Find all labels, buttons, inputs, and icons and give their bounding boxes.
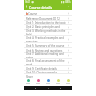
staticText: Unit 8: Final assessment of the — [26, 59, 65, 63]
button[interactable]: Navigate up — [25, 5, 28, 8]
staticText: Unit 10: Closing remarks — [26, 71, 57, 75]
staticText: field — [26, 33, 32, 36]
button[interactable]: More options — [67, 5, 70, 8]
staticText: Unit 1: Introduction to the topic — [26, 21, 66, 25]
button[interactable]: Share target — [37, 79, 40, 82]
staticText: exercises — [26, 40, 38, 43]
staticText: Share — [26, 75, 33, 79]
button[interactable]: Share target — [27, 79, 30, 82]
button[interactable]: Unit 5: Summary of the course — [24, 43, 72, 48]
button[interactable]: Reference Document ID 12 — [24, 16, 72, 21]
staticText: Unit 6: Review and questions — [26, 49, 63, 53]
staticText: ▮ ▮ 88% — [61, 0, 71, 4]
staticText: Unit 4: Practical examples and — [26, 36, 64, 40]
button[interactable]: Unit 6: Review and questions — [24, 48, 72, 53]
button[interactable]: Unit 3: Working methods in the — [24, 29, 72, 36]
staticText: 1 Course — [26, 12, 38, 16]
staticText: Unit 9: Certificate details — [26, 67, 57, 71]
button[interactable]: 1 Course — [24, 11, 72, 16]
staticText: work — [26, 63, 33, 66]
staticText: Reference Document ID 12 — [26, 17, 60, 21]
staticText: Course details — [29, 5, 53, 10]
staticText: notes — [26, 56, 34, 59]
staticText: 9:41 ● — [25, 0, 34, 4]
button[interactable]: Unit 10: Closing remarks — [24, 70, 72, 75]
staticText: Unit 5: Summary of the course — [26, 44, 65, 48]
staticText: Unit 7: Additional reading and — [26, 52, 64, 56]
staticText: Unit 2: Basic principles and ideas — [26, 25, 66, 30]
button[interactable]: Unit 7: Additional reading and — [24, 52, 72, 59]
button[interactable]: Share target — [47, 79, 50, 82]
button[interactable]: Share target — [67, 79, 70, 82]
button[interactable]: Unit 1: Introduction to the topic — [24, 20, 72, 25]
button[interactable]: Unit 8: Final assessment of the — [24, 59, 72, 66]
button[interactable]: Unit 4: Practical examples and — [24, 36, 72, 43]
staticText: Unit 3: Working methods in the — [26, 29, 66, 33]
button[interactable]: Unit 2: Basic principles and ideas — [24, 25, 72, 30]
button[interactable]: Share target — [57, 79, 60, 82]
button[interactable]: Unit 9: Certificate details — [24, 66, 72, 71]
